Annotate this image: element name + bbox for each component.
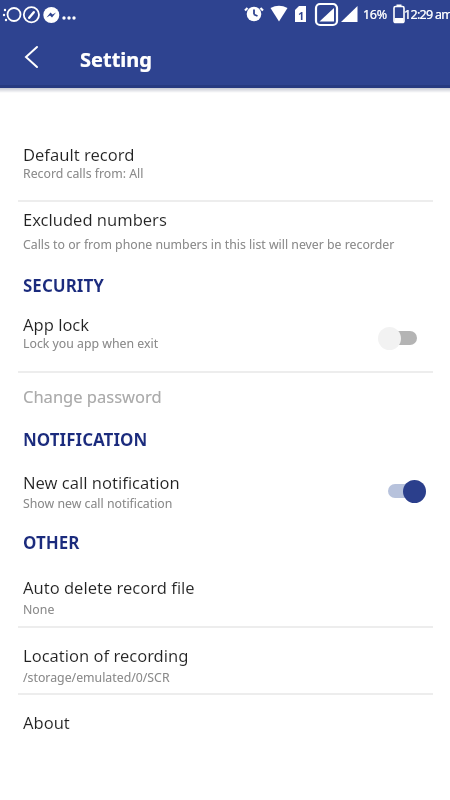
staticText: Lock you app when exit: [23, 335, 159, 352]
button[interactable]: New call notification: [0, 463, 450, 520]
button[interactable]: Location of recording: [0, 630, 450, 694]
button[interactable]: App lock: [0, 305, 450, 371]
staticText: App lock: [23, 313, 90, 335]
button[interactable]: [384, 478, 426, 504]
button[interactable]: Auto delete record file: [0, 568, 450, 627]
staticText: Show new call notification: [23, 495, 173, 512]
staticText: OTHER: [23, 531, 80, 554]
staticText: New call notification: [23, 471, 180, 493]
staticText: 1: [298, 8, 305, 23]
button[interactable]: About: [0, 700, 450, 745]
button[interactable]: [14, 42, 50, 74]
staticText: /storage/emulated/0/SCR: [23, 669, 170, 686]
staticText: Excluded numbers: [23, 208, 167, 230]
staticText: NOTIFICATION: [23, 428, 148, 451]
staticText: About: [23, 711, 70, 733]
staticText: Location of recording: [23, 644, 189, 666]
staticText: None: [23, 601, 55, 618]
staticText: Calls to or from phone numbers in this l…: [23, 236, 395, 253]
staticText: Record calls from: All: [23, 165, 144, 182]
button[interactable]: Change password: [0, 376, 450, 420]
staticText: Auto delete record file: [23, 576, 195, 598]
button[interactable]: Excluded numbers: [0, 202, 450, 258]
staticText: Change password: [23, 385, 162, 407]
staticText: 16%: [363, 6, 387, 23]
staticText: Setting: [80, 46, 152, 73]
button[interactable]: [378, 325, 420, 351]
staticText: 12:29 am: [404, 6, 450, 23]
staticText: Default record: [23, 143, 135, 165]
button[interactable]: Default record: [0, 136, 450, 201]
staticText: SECURITY: [23, 274, 104, 297]
